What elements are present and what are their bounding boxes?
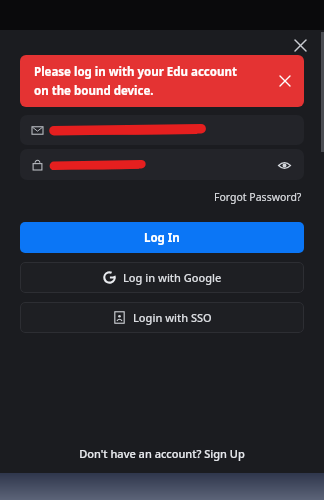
button[interactable]: Don't have an account? Sign Up — [73, 442, 251, 465]
button[interactable]: Close dialog — [286, 31, 314, 59]
staticText: Please log in with your Edu account on t… — [34, 64, 249, 98]
button[interactable]: Log In — [20, 222, 304, 253]
staticText: Log In — [144, 230, 180, 246]
button[interactable]: Dismiss message — [274, 70, 296, 92]
button[interactable]: Forgot Password? — [212, 188, 304, 206]
button[interactable] — [20, 115, 304, 145]
button[interactable]: Show password — [274, 155, 294, 175]
staticText: Forgot Password? — [214, 190, 302, 204]
staticText: Log in with Google — [123, 270, 222, 285]
staticText: Don't have an account? Sign Up — [79, 446, 245, 461]
button[interactable]: Log in with Google — [20, 262, 304, 293]
button[interactable]: Please log in with your Edu account on t… — [20, 55, 304, 107]
button[interactable]: Show password — [20, 149, 304, 180]
staticText: Login with SSO — [133, 310, 212, 325]
button[interactable]: Login with SSO — [20, 302, 304, 333]
